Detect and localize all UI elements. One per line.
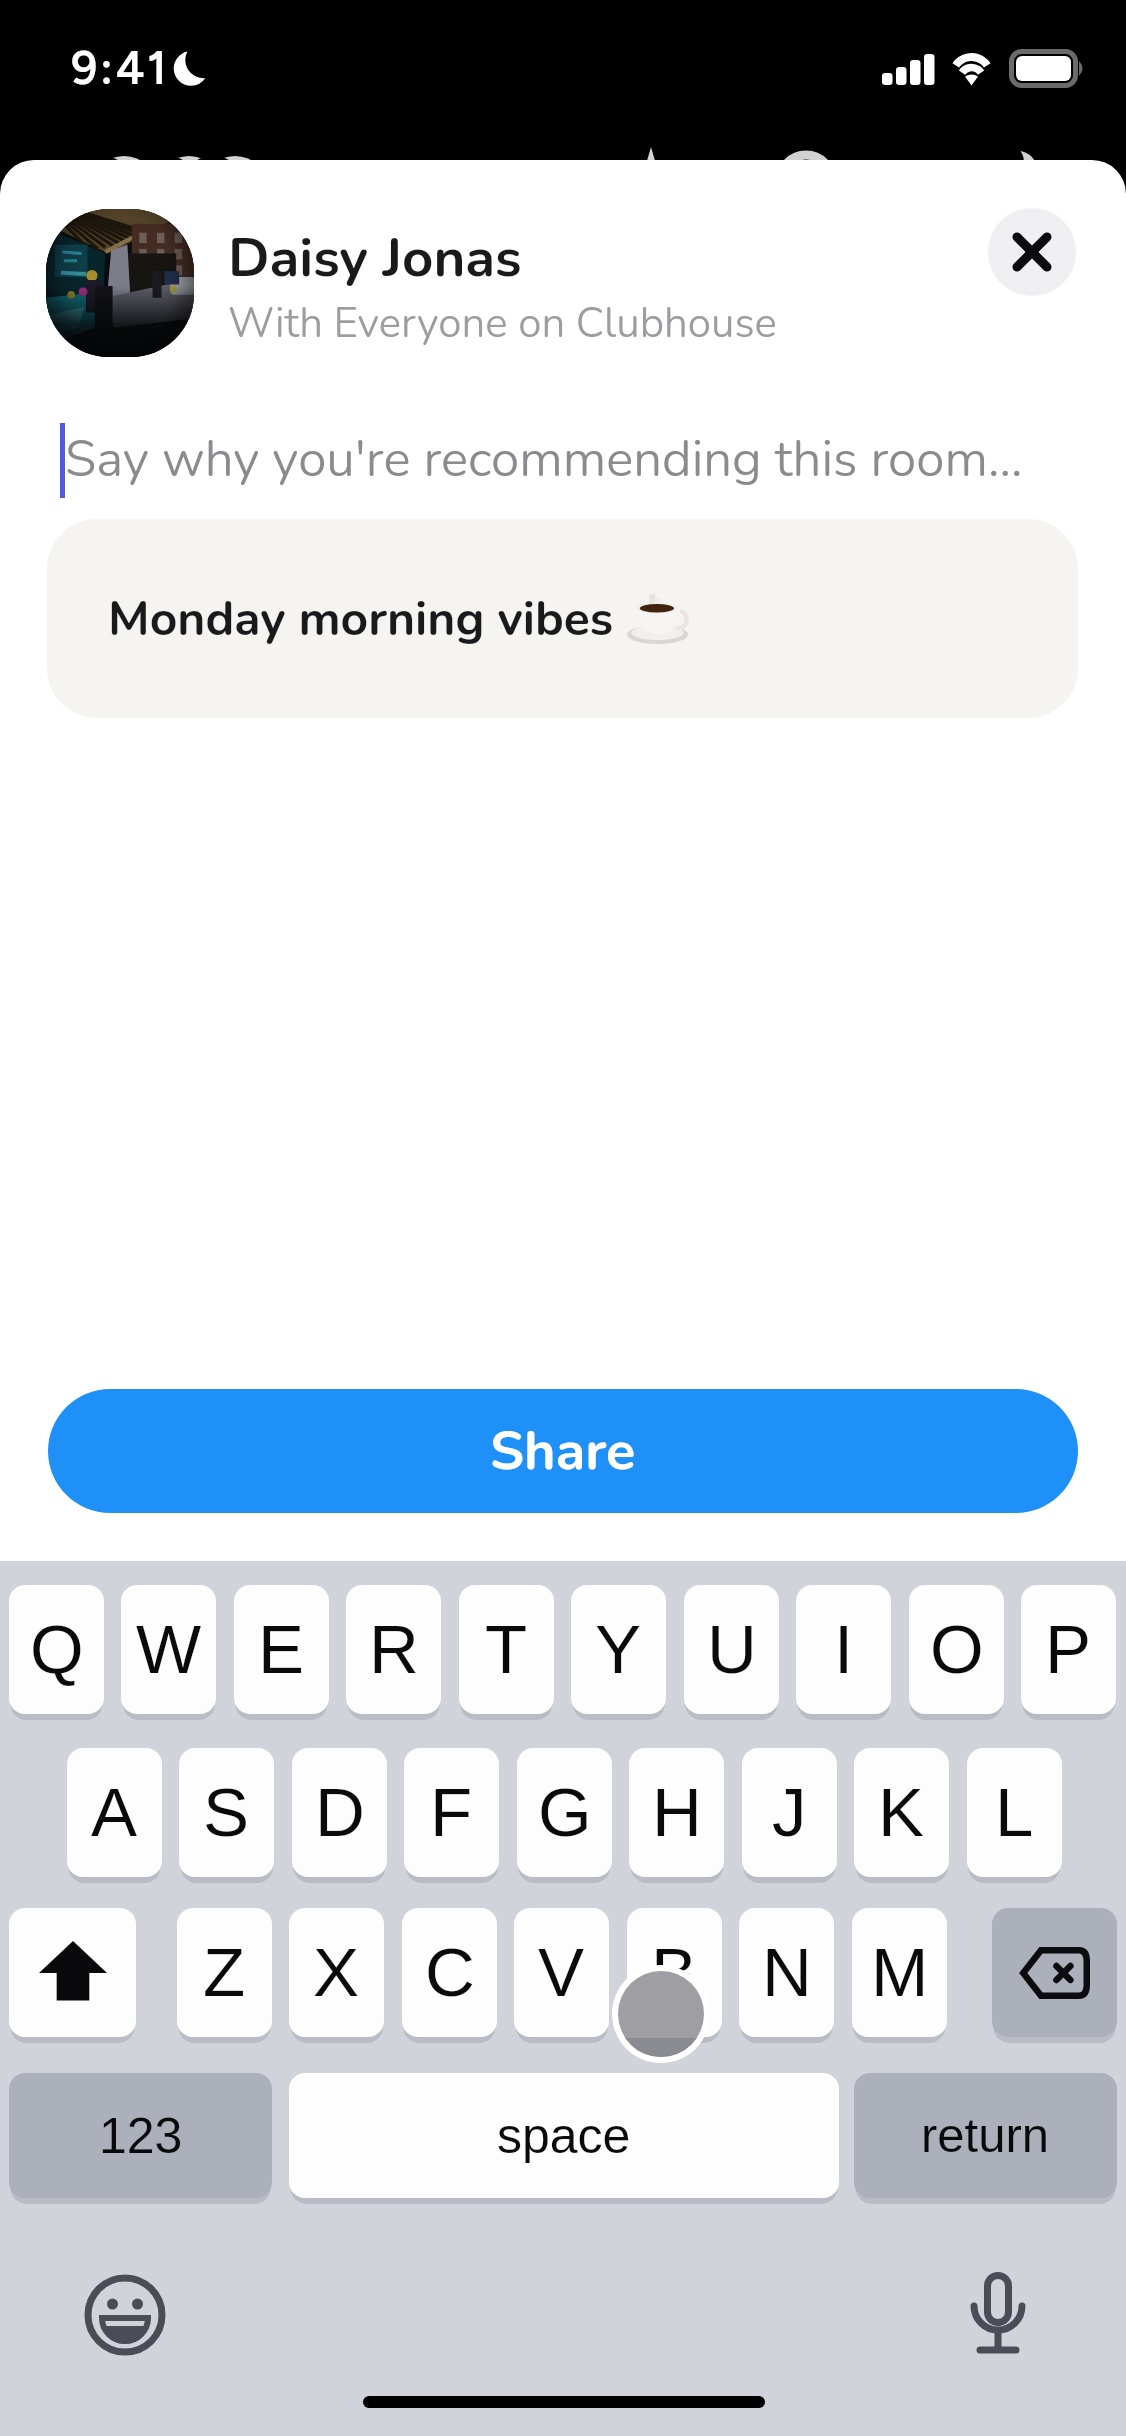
button[interactable]: D [292,1748,387,1877]
staticText: Say why you're recommending this room... [65,424,1023,494]
button[interactable]: C [402,1908,497,2037]
staticText: Daisy Jonas [228,221,522,295]
staticText: Q [30,1611,84,1688]
button[interactable]: Q [9,1585,104,1714]
staticText: K [878,1774,925,1851]
staticText: W [136,1611,202,1688]
button[interactable]: U [684,1585,779,1714]
staticText: Y [595,1611,642,1688]
staticText: T [485,1611,528,1688]
staticText: I [834,1611,854,1688]
button[interactable]: Dictation [951,2262,1045,2356]
staticText: X [313,1934,360,2011]
button[interactable]: X [289,1908,384,2037]
button[interactable]: Shift [9,1908,136,2037]
button[interactable]: Close [988,208,1076,296]
staticText: V [538,1934,585,2011]
button[interactable]: Share [48,1389,1078,1513]
button[interactable]: S [179,1748,274,1877]
button[interactable]: M [852,1908,947,2037]
staticText: R [369,1611,419,1688]
staticText: H [652,1774,702,1851]
staticText: P [1045,1611,1092,1688]
staticText: O [930,1611,984,1688]
button[interactable]: V [514,1908,609,2037]
staticText: N [762,1934,812,2011]
staticText: M [871,1934,929,2011]
button[interactable]: J [742,1748,837,1877]
button[interactable]: Monday morning vibes [47,519,1078,718]
button[interactable]: A [67,1748,162,1877]
staticText: 123 [99,2108,183,2164]
staticText: J [772,1774,807,1851]
button[interactable]: E [234,1585,329,1714]
staticText: C [425,1934,475,2011]
staticText: return [921,2108,1050,2163]
button[interactable]: Backspace [992,1908,1117,2037]
staticText: A [91,1774,138,1851]
button[interactable]: Z [177,1908,272,2037]
button[interactable]: P [1021,1585,1116,1714]
button[interactable]: 123 [9,2073,272,2198]
button[interactable]: H [629,1748,724,1877]
button[interactable]: space [289,2073,839,2198]
staticText: Share [490,1414,636,1488]
button[interactable]: R [346,1585,441,1714]
button[interactable]: Emoji keyboard [78,2268,172,2362]
button[interactable]: G [517,1748,612,1877]
staticText: D [315,1774,365,1851]
button[interactable]: Y [571,1585,666,1714]
button[interactable]: B [627,1908,722,2037]
button[interactable]: return [854,2073,1117,2198]
staticText: F [430,1774,473,1851]
button[interactable]: K [854,1748,949,1877]
button[interactable]: W [121,1585,216,1714]
staticText: G [538,1774,592,1851]
staticText: B [651,1934,698,2011]
staticText: E [258,1611,305,1688]
staticText: space [497,2108,631,2164]
staticText: 9:41 [71,40,170,95]
button[interactable]: T [459,1585,554,1714]
button[interactable]: N [739,1908,834,2037]
button[interactable]: F [404,1748,499,1877]
button[interactable]: O [909,1585,1004,1714]
staticText: With Everyone on Clubhouse [228,295,777,352]
staticText: S [203,1774,250,1851]
button[interactable]: I [796,1585,891,1714]
staticText: Monday morning vibes [108,586,627,651]
staticText: Z [203,1934,246,2011]
staticText: L [995,1774,1034,1851]
staticText: U [707,1611,757,1688]
button[interactable]: L [967,1748,1062,1877]
